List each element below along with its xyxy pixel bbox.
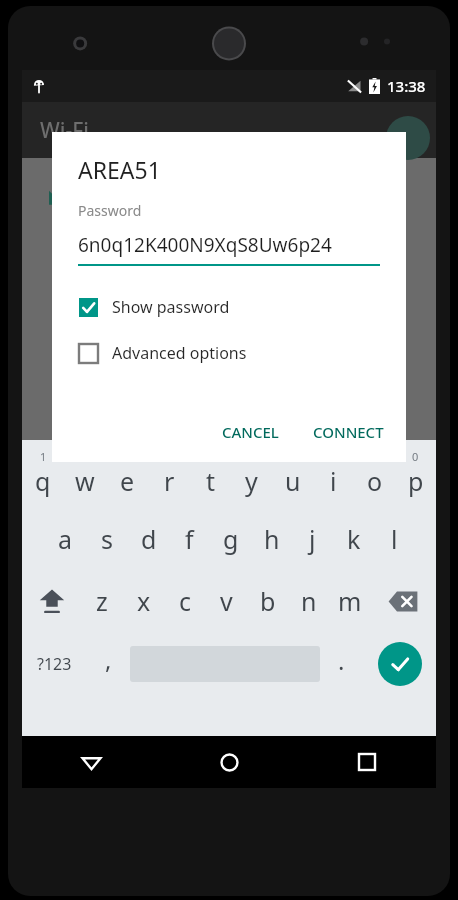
staticText: q [35, 464, 51, 498]
button[interactable]: ?123 [22, 632, 87, 696]
staticText: 3 [124, 449, 131, 464]
staticText: v [220, 584, 233, 618]
button[interactable]: g [210, 508, 251, 570]
staticText: CANCEL [222, 422, 279, 442]
staticText: n [301, 584, 317, 618]
staticText: p [408, 464, 424, 498]
button[interactable]: j [292, 508, 333, 570]
button[interactable]: a [44, 508, 86, 570]
staticText: , [105, 643, 112, 676]
button[interactable]: s [86, 508, 128, 570]
staticText: 6 [248, 449, 255, 464]
button[interactable]: z [81, 570, 123, 632]
button[interactable]: More options [388, 110, 428, 150]
staticText: CONNECT [313, 422, 384, 442]
button[interactable]: Show password [52, 290, 406, 324]
staticText: d [141, 522, 157, 556]
button[interactable]: h [251, 508, 292, 570]
button[interactable]: CANCEL [208, 414, 293, 450]
button[interactable]: 4 [148, 444, 190, 508]
staticText: . [338, 644, 345, 677]
button[interactable]: c [165, 570, 206, 632]
staticText: 13:38 [387, 76, 426, 96]
button[interactable]: 2 [64, 444, 106, 508]
button[interactable]: k [333, 508, 374, 570]
staticText: 9 [371, 449, 378, 464]
staticText: 7 [289, 449, 296, 464]
staticText: a [58, 522, 73, 556]
staticText: g [223, 522, 239, 556]
staticText: ?123 [37, 653, 72, 675]
staticText: u [285, 464, 301, 498]
staticText: h [264, 522, 280, 556]
staticText: k [347, 522, 361, 556]
button[interactable]: . [320, 632, 363, 696]
staticText: AREA51 [78, 154, 161, 185]
staticText: r [164, 464, 175, 498]
staticText: 2 [82, 449, 89, 464]
button[interactable]: x [123, 570, 165, 632]
staticText: s [101, 522, 113, 556]
staticText: j [309, 522, 316, 556]
button[interactable]: Shift [22, 570, 81, 632]
staticText: t [206, 464, 216, 498]
button[interactable]: d [128, 508, 169, 570]
button[interactable]: m [329, 570, 370, 632]
button[interactable]: 1 [22, 444, 64, 508]
staticText: Wi-Fi [40, 116, 89, 145]
button[interactable]: 5 [190, 444, 231, 508]
staticText: 1 [40, 449, 47, 464]
staticText: b [260, 584, 276, 618]
button[interactable]: l [374, 508, 415, 570]
staticText: 5 [207, 449, 214, 464]
button[interactable]: 0 [395, 444, 436, 508]
button[interactable]: n [288, 570, 329, 632]
staticText: e [120, 464, 135, 498]
staticText: c [179, 584, 192, 618]
staticText: y [245, 464, 258, 498]
staticText: 6n0q12K400N9XqS8Uw6p24 [78, 232, 332, 258]
button[interactable]: Recent apps [298, 736, 436, 788]
button[interactable]: Enter [378, 642, 422, 686]
staticText: l [391, 522, 398, 556]
staticText: f [185, 522, 194, 556]
staticText: Show password [112, 296, 230, 318]
staticText: m [338, 584, 362, 618]
staticText: 0 [412, 449, 419, 464]
staticText: o [367, 464, 383, 498]
button[interactable]: Backspace [370, 570, 436, 632]
button[interactable]: 9 [354, 444, 395, 508]
button[interactable]: CONNECT [299, 414, 398, 450]
button[interactable]: 6 [231, 444, 272, 508]
button[interactable]: Back [22, 736, 160, 788]
staticText: 8 [330, 449, 337, 464]
button[interactable]: 8 [313, 444, 354, 508]
staticText: x [137, 584, 151, 618]
button[interactable]: , [87, 632, 130, 696]
staticText: w [75, 464, 95, 498]
staticText: Advanced options [112, 342, 247, 364]
staticText: z [96, 584, 108, 618]
staticText: 4 [166, 449, 173, 464]
staticText: Password [78, 201, 142, 220]
staticText: i [330, 464, 337, 498]
button[interactable]: b [247, 570, 288, 632]
button[interactable]: 7 [272, 444, 313, 508]
button[interactable]: 3 [106, 444, 148, 508]
button[interactable]: v [206, 570, 247, 632]
button[interactable]: f [169, 508, 210, 570]
button[interactable]: Advanced options [52, 336, 406, 370]
button[interactable]: Home [160, 736, 298, 788]
